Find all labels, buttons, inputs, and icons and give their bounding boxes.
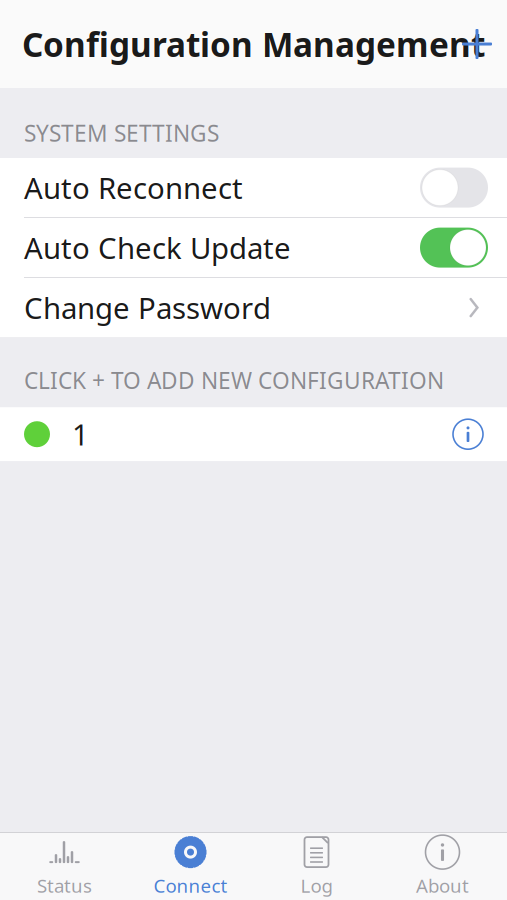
- button[interactable]: Auto Reconnect: [0, 158, 507, 217]
- button[interactable]: 1: [0, 407, 507, 461]
- staticText: Log: [300, 873, 332, 898]
- staticText: CLICK + TO ADD NEW CONFIGURATION: [24, 365, 444, 395]
- button[interactable]: Add configuration: [447, 14, 507, 74]
- staticText: Status: [37, 873, 92, 898]
- button[interactable]: About: [379, 833, 505, 900]
- button[interactable]: Auto Check Update: [0, 218, 507, 277]
- staticText: SYSTEM SETTINGS: [24, 118, 219, 148]
- staticText: 1: [72, 415, 89, 454]
- button[interactable]: Change Password: [0, 278, 507, 337]
- staticText: Connect: [153, 873, 227, 898]
- staticText: Change Password: [24, 288, 271, 327]
- button[interactable]: Status: [1, 833, 127, 900]
- staticText: About: [416, 873, 469, 898]
- staticText: Configuration Management: [22, 22, 485, 66]
- button[interactable]: Log: [253, 833, 379, 900]
- button[interactable]: Connect: [127, 833, 253, 900]
- staticText: Auto Check Update: [24, 228, 291, 267]
- staticText: Auto Reconnect: [24, 168, 243, 207]
